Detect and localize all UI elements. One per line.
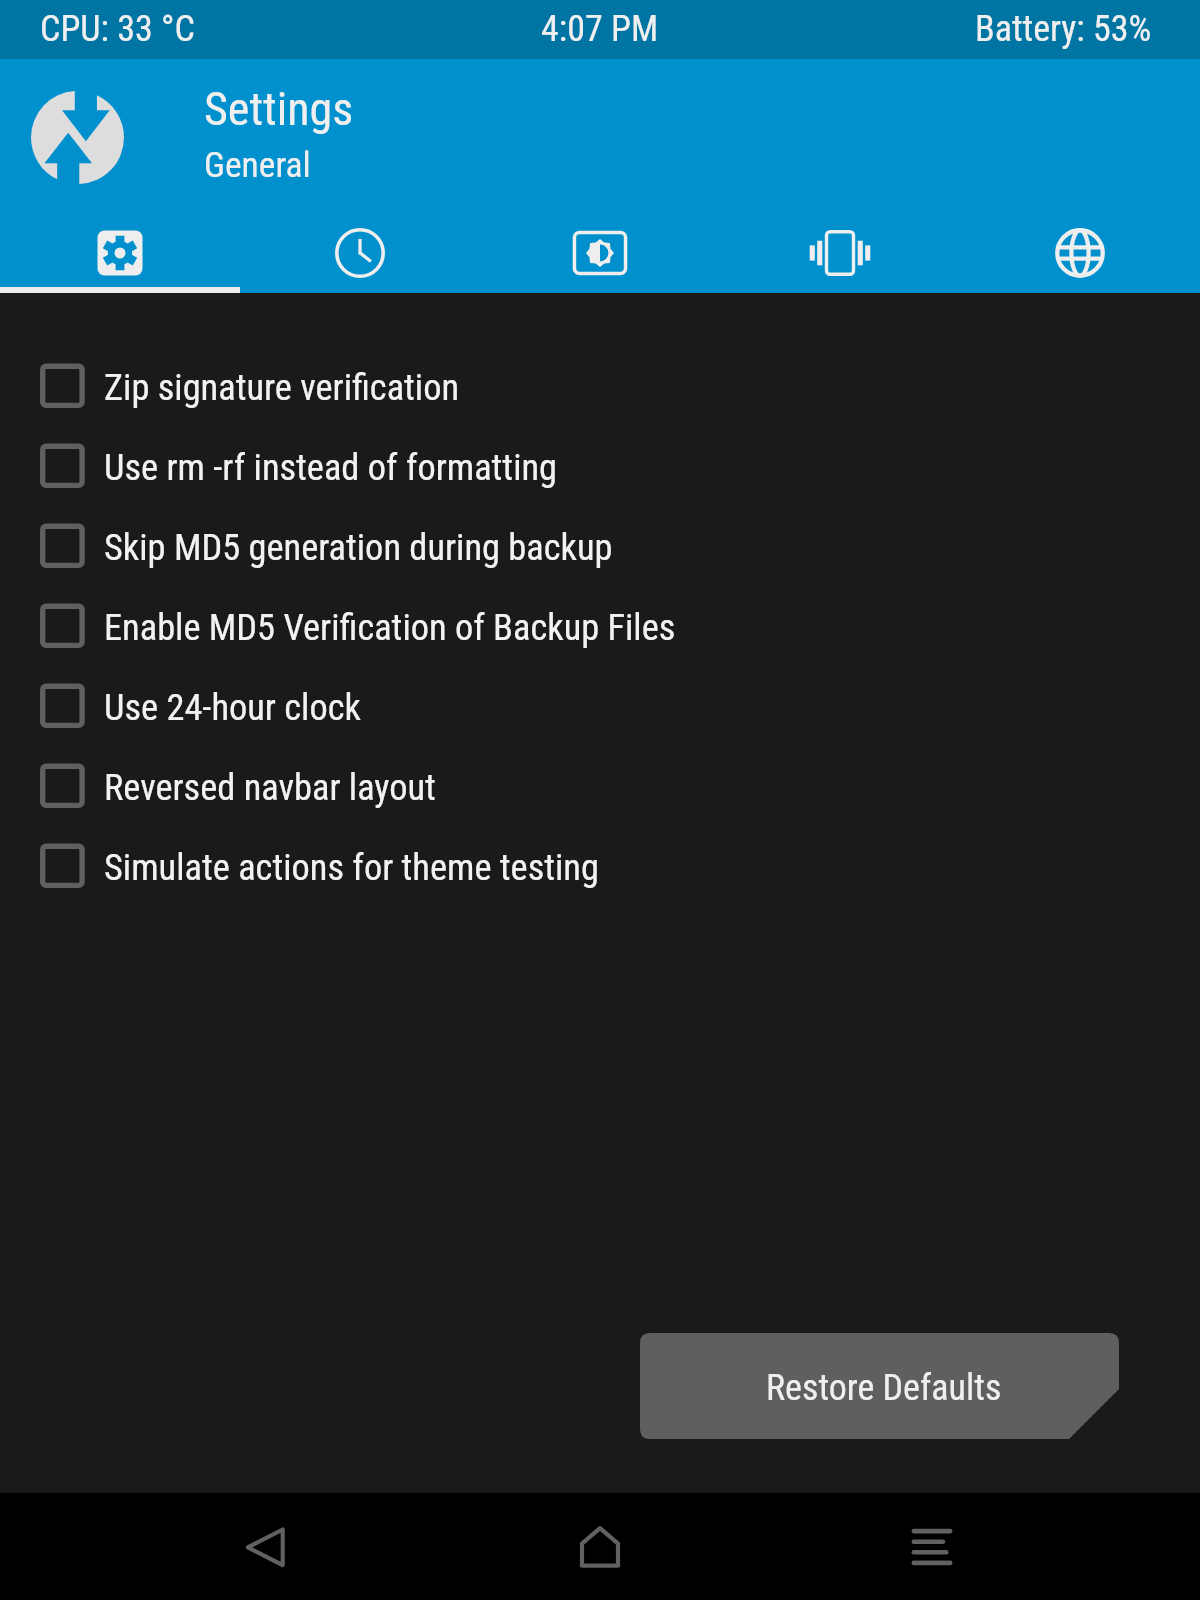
button[interactable]: Recent apps xyxy=(877,1493,987,1600)
staticText: Zip signature verification xyxy=(104,366,460,409)
staticText: Battery: 53% xyxy=(975,8,1152,50)
button[interactable]: Language tab xyxy=(960,213,1200,293)
button[interactable]: Use 24-hour clock xyxy=(0,670,1200,750)
button[interactable]: Reversed navbar layout xyxy=(0,750,1200,830)
button[interactable]: Vibration tab xyxy=(720,213,960,293)
button[interactable]: Restore Defaults xyxy=(640,1333,1119,1439)
staticText: Use rm -rf instead of formatting xyxy=(104,446,558,489)
staticText: General xyxy=(204,144,311,186)
button[interactable]: Enable MD5 Verification of Backup Files xyxy=(0,590,1200,670)
button[interactable]: Settings tab xyxy=(0,213,240,293)
staticText: Enable MD5 Verification of Backup Files xyxy=(104,606,676,649)
button[interactable]: Back xyxy=(212,1493,322,1600)
button[interactable]: Time tab xyxy=(240,213,480,293)
button[interactable]: Zip signature verification xyxy=(0,350,1200,430)
button[interactable]: Screen tab xyxy=(480,213,720,293)
staticText: CPU: 33 °C xyxy=(40,8,195,50)
button[interactable]: Use rm -rf instead of formatting xyxy=(0,430,1200,510)
staticText: Skip MD5 generation during backup xyxy=(104,526,613,569)
staticText: Reversed navbar layout xyxy=(104,766,436,809)
staticText: 4:07 PM xyxy=(541,8,659,50)
button[interactable]: Skip MD5 generation during backup xyxy=(0,510,1200,590)
staticText: Restore Defaults xyxy=(766,1367,1002,1409)
button[interactable]: Simulate actions for theme testing xyxy=(0,830,1200,910)
button[interactable]: Home xyxy=(545,1493,655,1600)
staticText: Simulate actions for theme testing xyxy=(104,846,599,889)
staticText: Use 24-hour clock xyxy=(104,686,361,729)
staticText: Settings xyxy=(204,82,354,136)
